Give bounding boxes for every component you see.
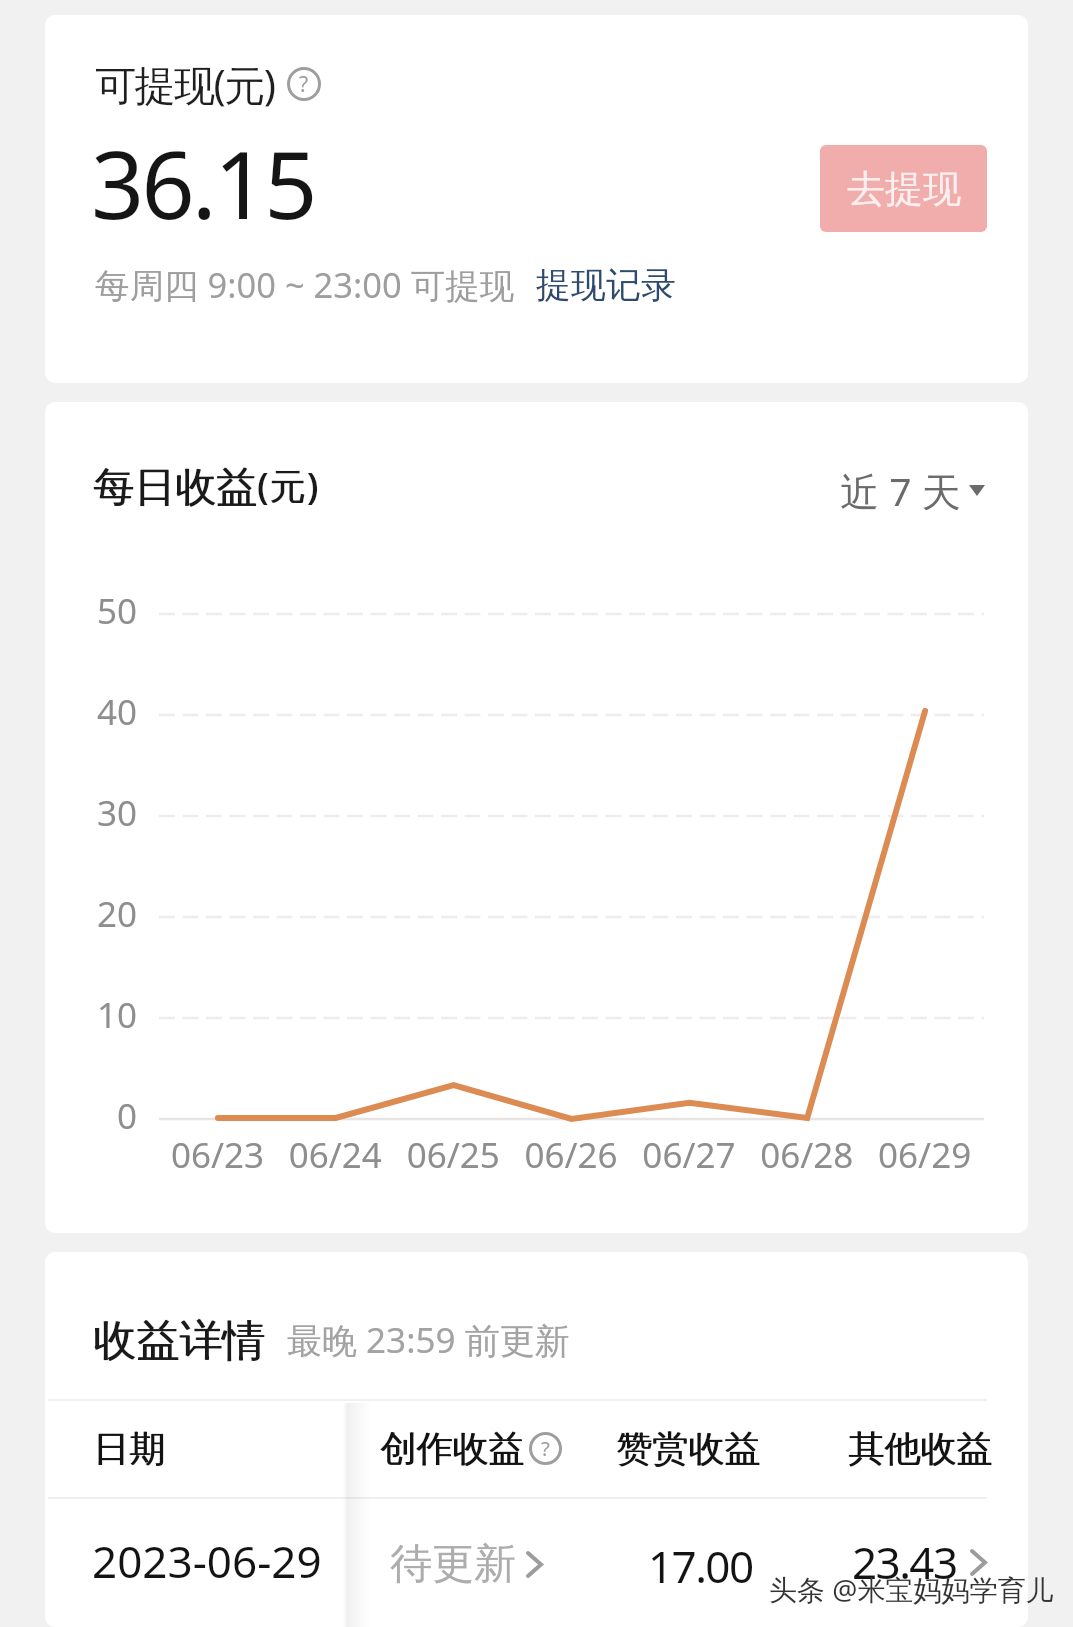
staticText: 每日收益 bbox=[94, 462, 258, 514]
button[interactable]: 提现记录 bbox=[536, 263, 676, 307]
staticText: 2023-06-29 bbox=[92, 1531, 322, 1591]
staticText: (元) bbox=[257, 461, 320, 510]
staticText: 收益详情 bbox=[93, 1314, 265, 1368]
staticText: 36.15 bbox=[91, 120, 315, 247]
staticText: 可提现(元) bbox=[95, 56, 275, 112]
staticText: 收益详情 bbox=[94, 1314, 266, 1368]
button[interactable]: 2023-06-29 bbox=[48, 1499, 348, 1627]
staticText: 日期 bbox=[93, 1426, 165, 1471]
staticText: 去提现 bbox=[847, 165, 961, 213]
staticText: 23.43 bbox=[852, 1532, 957, 1592]
staticText: 日期 bbox=[94, 1426, 166, 1471]
staticText: (元) bbox=[258, 461, 321, 510]
staticText: 其他收益 bbox=[849, 1426, 993, 1471]
button[interactable]: About withdrawable balance bbox=[287, 67, 321, 101]
staticText: 最晚 23:59 前更新 bbox=[287, 1316, 570, 1364]
staticText: 赞赏收益 bbox=[616, 1426, 760, 1471]
staticText: 近 7 天 bbox=[840, 464, 961, 517]
staticText: 创作收益 bbox=[380, 1426, 524, 1471]
button[interactable]: 去提现 bbox=[820, 145, 987, 232]
staticText: 17.00 bbox=[648, 1536, 753, 1596]
button[interactable]: 23.43 bbox=[805, 1499, 987, 1627]
staticText: 每日收益 bbox=[93, 462, 257, 514]
staticText: ? bbox=[541, 1434, 550, 1462]
staticText: ? bbox=[299, 69, 309, 98]
staticText: 每周四 9:00 ~ 23:00 可提现 bbox=[95, 261, 515, 308]
button[interactable]: 近 7 天 bbox=[840, 464, 985, 517]
staticText: 创作收益 bbox=[381, 1426, 525, 1471]
staticText: 头条 @米宝妈妈学育儿 bbox=[769, 1570, 1054, 1608]
staticText: 其他收益 bbox=[848, 1426, 992, 1471]
button[interactable]: 待更新 bbox=[371, 1499, 601, 1627]
staticText: 待更新 bbox=[390, 1538, 516, 1591]
staticText: 赞赏收益 bbox=[617, 1426, 761, 1471]
staticText: 提现记录 bbox=[536, 263, 676, 307]
button[interactable]: About creation earnings bbox=[529, 1432, 562, 1465]
